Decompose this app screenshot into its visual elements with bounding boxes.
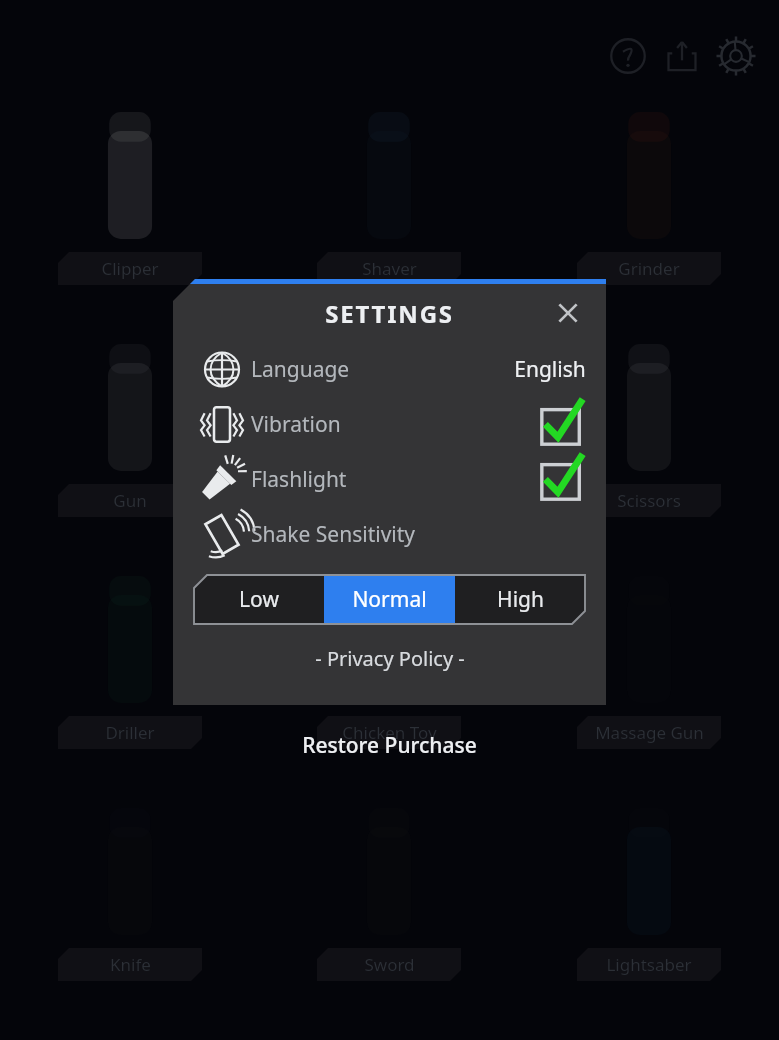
staticText: High [497, 585, 544, 614]
button[interactable]: Chicken Toy [259, 576, 519, 749]
staticText: Driller [105, 721, 155, 744]
button[interactable]: Share [655, 29, 709, 83]
button[interactable]: Help [601, 29, 655, 83]
button[interactable]: Grinder [577, 252, 721, 285]
staticText: Shaver [362, 257, 417, 280]
button[interactable]: Language icon [193, 342, 586, 397]
button[interactable]: Vibration icon [193, 397, 586, 452]
button[interactable]: Clipper [0, 112, 259, 285]
button[interactable]: Razor [317, 484, 461, 517]
button[interactable]: Sword [317, 948, 461, 981]
button[interactable]: Shaver [317, 252, 461, 285]
button[interactable]: Lightsaber [577, 948, 721, 981]
staticText: Clipper [101, 257, 159, 280]
button[interactable]: Gun [0, 344, 259, 517]
staticText: Chicken Toy [342, 721, 437, 744]
staticText: Normal [352, 585, 427, 614]
staticText: Massage Gun [595, 721, 704, 744]
button[interactable]: Shaver [259, 112, 519, 285]
other: Shake icon [193, 507, 251, 562]
button[interactable]: High [455, 574, 586, 625]
button[interactable]: Scissors [519, 344, 779, 517]
button[interactable]: Knife [58, 948, 202, 981]
button[interactable]: Close [550, 295, 586, 331]
button[interactable]: Clipper [58, 252, 202, 285]
button[interactable]: Razor [259, 344, 519, 517]
staticText: Restore Purchase [302, 731, 477, 755]
button[interactable]: Scissors [577, 484, 721, 517]
staticText: Gun [113, 489, 147, 512]
button[interactable]: Gun [58, 484, 202, 517]
button[interactable]: Chicken Toy [317, 716, 461, 749]
staticText: Vibration [251, 410, 341, 439]
button[interactable]: Settings [709, 29, 763, 83]
button[interactable]: Flashlight icon [193, 452, 586, 507]
button[interactable]: Sword [259, 808, 519, 981]
button[interactable]: Toggle on [538, 401, 586, 449]
button[interactable]: Low [193, 574, 324, 625]
button[interactable]: Massage Gun [577, 716, 721, 749]
button[interactable]: Grinder [519, 112, 779, 285]
button[interactable]: Massage Gun [519, 576, 779, 749]
staticText: - Privacy Policy - [315, 645, 465, 672]
button[interactable]: Normal [324, 574, 455, 625]
button[interactable]: Shake icon [193, 507, 586, 562]
button[interactable]: Restore Purchase [292, 729, 487, 757]
button[interactable]: Knife [0, 808, 259, 981]
button[interactable]: Lightsaber [519, 808, 779, 981]
staticText: Lightsaber [606, 953, 692, 976]
other: Language icon [193, 342, 251, 397]
other: Vibration icon [193, 397, 251, 452]
staticText: English [514, 355, 586, 384]
staticText: Language [251, 355, 350, 384]
staticText: SETTINGS [325, 297, 454, 330]
staticText: Shake Sensitivity [251, 520, 416, 549]
staticText: Sword [364, 953, 415, 976]
staticText: Grinder [618, 257, 680, 280]
staticText: Flashlight [251, 465, 347, 494]
other: Flashlight icon [193, 452, 251, 507]
button[interactable]: - Privacy Policy - [193, 645, 586, 672]
button[interactable]: Driller [0, 576, 259, 749]
button[interactable]: Toggle on [538, 456, 586, 504]
staticText: Low [239, 585, 279, 614]
button[interactable]: Driller [58, 716, 202, 749]
staticText: Knife [110, 953, 151, 976]
staticText: Scissors [617, 489, 681, 512]
